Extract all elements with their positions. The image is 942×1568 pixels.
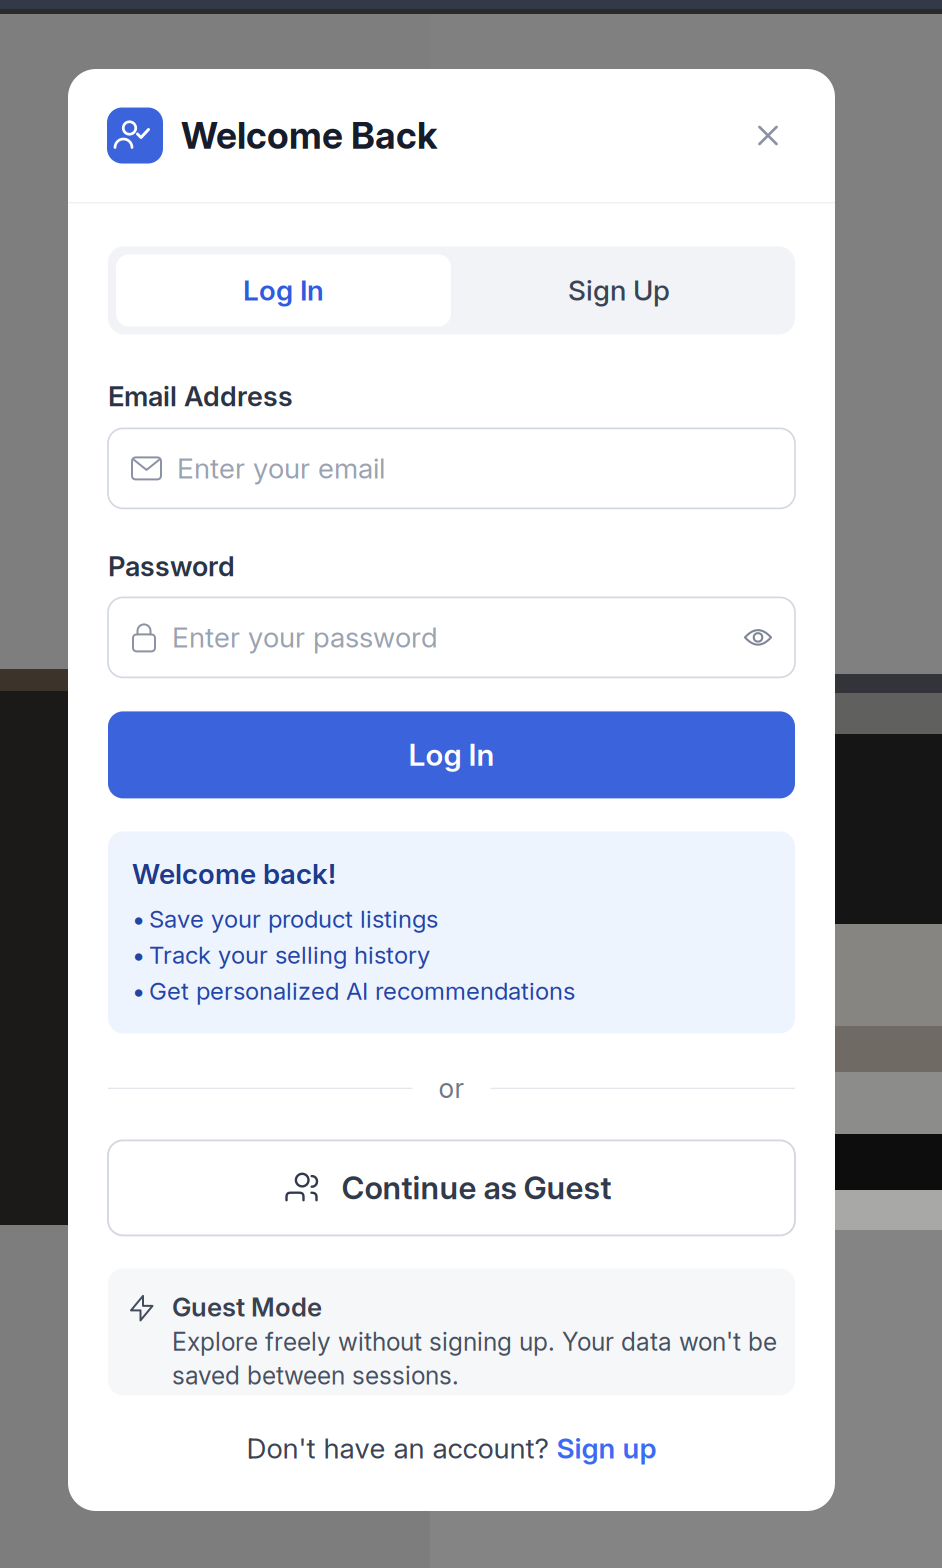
staticText: Save your product listings	[149, 904, 438, 933]
button[interactable]: Show password	[743, 625, 773, 649]
staticText: Welcome Back	[181, 113, 437, 158]
button[interactable]: Continue as Guest	[108, 1140, 795, 1235]
staticText: •	[132, 904, 145, 933]
staticText: Log In	[408, 737, 494, 773]
staticText: Sign Up	[568, 273, 670, 307]
staticText: Enter your email	[177, 451, 385, 485]
staticText: Sign up	[556, 1431, 656, 1465]
button[interactable]: Close	[750, 117, 786, 153]
staticText: Get personalized AI recommendations	[149, 976, 575, 1005]
staticText: Password	[108, 550, 235, 583]
staticText: Guest Mode	[172, 1291, 322, 1323]
staticText: or	[438, 1072, 464, 1105]
staticText: Continue as Guest	[341, 1169, 611, 1207]
staticText: saved between sessions.	[172, 1361, 459, 1390]
staticText: •	[132, 940, 145, 969]
button[interactable]: Log In	[108, 711, 795, 798]
staticText: Track your selling history	[149, 940, 430, 969]
staticText: Enter your password	[172, 620, 438, 654]
button[interactable]: Sign Up	[451, 254, 787, 326]
staticText: Welcome back!	[132, 857, 336, 891]
button[interactable]: Log In	[116, 254, 451, 326]
staticText: Don't have an account?	[246, 1431, 556, 1465]
staticText: Explore freely without signing up. Your …	[172, 1327, 777, 1357]
staticText: Log In	[243, 273, 324, 307]
staticText: •	[132, 976, 145, 1005]
button[interactable]: Don't have an account?	[108, 1426, 795, 1470]
staticText: Email Address	[108, 380, 293, 413]
